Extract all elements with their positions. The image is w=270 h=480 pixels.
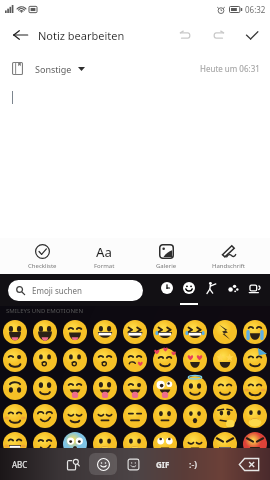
button[interactable]: Emoji	[210, 430, 240, 458]
button[interactable]: Emoji	[30, 430, 60, 458]
button[interactable]: Emoji	[180, 346, 210, 374]
staticText: Heute um 06:31	[200, 63, 260, 74]
button[interactable]: Wiederholen	[202, 18, 234, 52]
button[interactable]: Emoji	[150, 318, 180, 346]
button[interactable]: Emoji	[0, 374, 30, 402]
button[interactable]: Essen	[244, 274, 266, 306]
button[interactable]: Emoji	[60, 430, 90, 458]
button[interactable]: Emoji	[60, 374, 90, 402]
staticText: Aa	[96, 243, 112, 259]
staticText: ABC	[12, 459, 28, 470]
button[interactable]: Löschen	[238, 457, 260, 472]
button[interactable]: Emoji	[30, 402, 60, 430]
staticText: 06:32	[245, 4, 266, 15]
button[interactable]: Emoji	[240, 430, 270, 458]
button[interactable]: Emoji	[90, 346, 120, 374]
button[interactable]: Emoji	[30, 318, 60, 346]
button[interactable]: Sticker suchen	[58, 448, 88, 480]
button[interactable]: Emoji	[90, 430, 120, 458]
button[interactable]: Emoji	[240, 318, 270, 346]
button[interactable]: Emoji	[90, 318, 120, 346]
button[interactable]: Emoji	[0, 346, 30, 374]
button[interactable]: Emoji suchen	[8, 280, 143, 301]
button[interactable]: GIF	[148, 448, 178, 480]
button[interactable]: Smileys	[178, 274, 200, 306]
button[interactable]: Tiere und Natur	[222, 274, 244, 306]
button[interactable]: Emoji	[240, 402, 270, 430]
button[interactable]: Emoji	[120, 374, 150, 402]
button[interactable]: Emoji	[150, 374, 180, 402]
button[interactable]: Emoji	[210, 346, 240, 374]
button[interactable]: Emoji	[180, 374, 210, 402]
button[interactable]: Galerie	[135, 238, 197, 274]
button[interactable]: Fertig	[234, 18, 270, 52]
button[interactable]: Sonstige	[12, 62, 85, 75]
button[interactable]: Checkliste	[11, 238, 73, 274]
button[interactable]: :-)	[178, 448, 208, 480]
button[interactable]: ABC	[0, 448, 40, 480]
button[interactable]: Emoji	[150, 402, 180, 430]
staticText: SMILEYS UND EMOTIONEN	[6, 307, 84, 315]
button[interactable]: Emoji	[210, 374, 240, 402]
button[interactable]: Emoji	[88, 448, 118, 480]
button[interactable]: Personen	[200, 274, 222, 306]
button[interactable]: Emoji	[240, 374, 270, 402]
button[interactable]: Emoji	[0, 318, 30, 346]
staticText: Handschrift	[212, 262, 245, 270]
button[interactable]: Emoji	[90, 402, 120, 430]
button[interactable]: Emoji	[180, 318, 210, 346]
button[interactable]: Emoji	[120, 318, 150, 346]
button[interactable]: Handschrift	[197, 238, 259, 274]
staticText: Emoji suchen	[32, 285, 82, 296]
button[interactable]: Sticker	[118, 448, 148, 480]
button[interactable]: Emoji	[210, 318, 240, 346]
button[interactable]: Emoji	[0, 402, 30, 430]
staticText: Notiz bearbeiten	[38, 28, 125, 43]
button[interactable]: Emoji	[120, 346, 150, 374]
button[interactable]: Rückgängig	[170, 18, 202, 52]
staticText: Sonstige	[35, 63, 72, 75]
button[interactable]: Emoji	[0, 430, 30, 458]
button[interactable]: Emoji	[120, 402, 150, 430]
button[interactable]: Emoji	[90, 374, 120, 402]
button[interactable]: Aa	[73, 238, 135, 274]
button[interactable]: Emoji	[60, 402, 90, 430]
staticText: :-)	[189, 458, 198, 470]
staticText: Format	[94, 262, 115, 270]
button[interactable]: Emoji	[30, 374, 60, 402]
button[interactable]: Emoji	[180, 430, 210, 458]
button[interactable]: Emoji	[60, 346, 90, 374]
button[interactable]: Emoji	[120, 430, 150, 458]
button[interactable]: Emoji	[180, 402, 210, 430]
button[interactable]: Emoji	[210, 402, 240, 430]
staticText: GIF	[156, 459, 170, 470]
button[interactable]: Zurück	[8, 23, 32, 47]
button[interactable]: Emoji	[150, 346, 180, 374]
staticText: Galerie	[156, 262, 177, 270]
button[interactable]: Emoji	[240, 346, 270, 374]
button[interactable]: Zuletzt verwendet	[156, 274, 178, 306]
button[interactable]: Emoji	[150, 430, 180, 458]
staticText: Checkliste	[28, 262, 57, 270]
button[interactable]: Emoji	[30, 346, 60, 374]
button[interactable]: Emoji	[60, 318, 90, 346]
